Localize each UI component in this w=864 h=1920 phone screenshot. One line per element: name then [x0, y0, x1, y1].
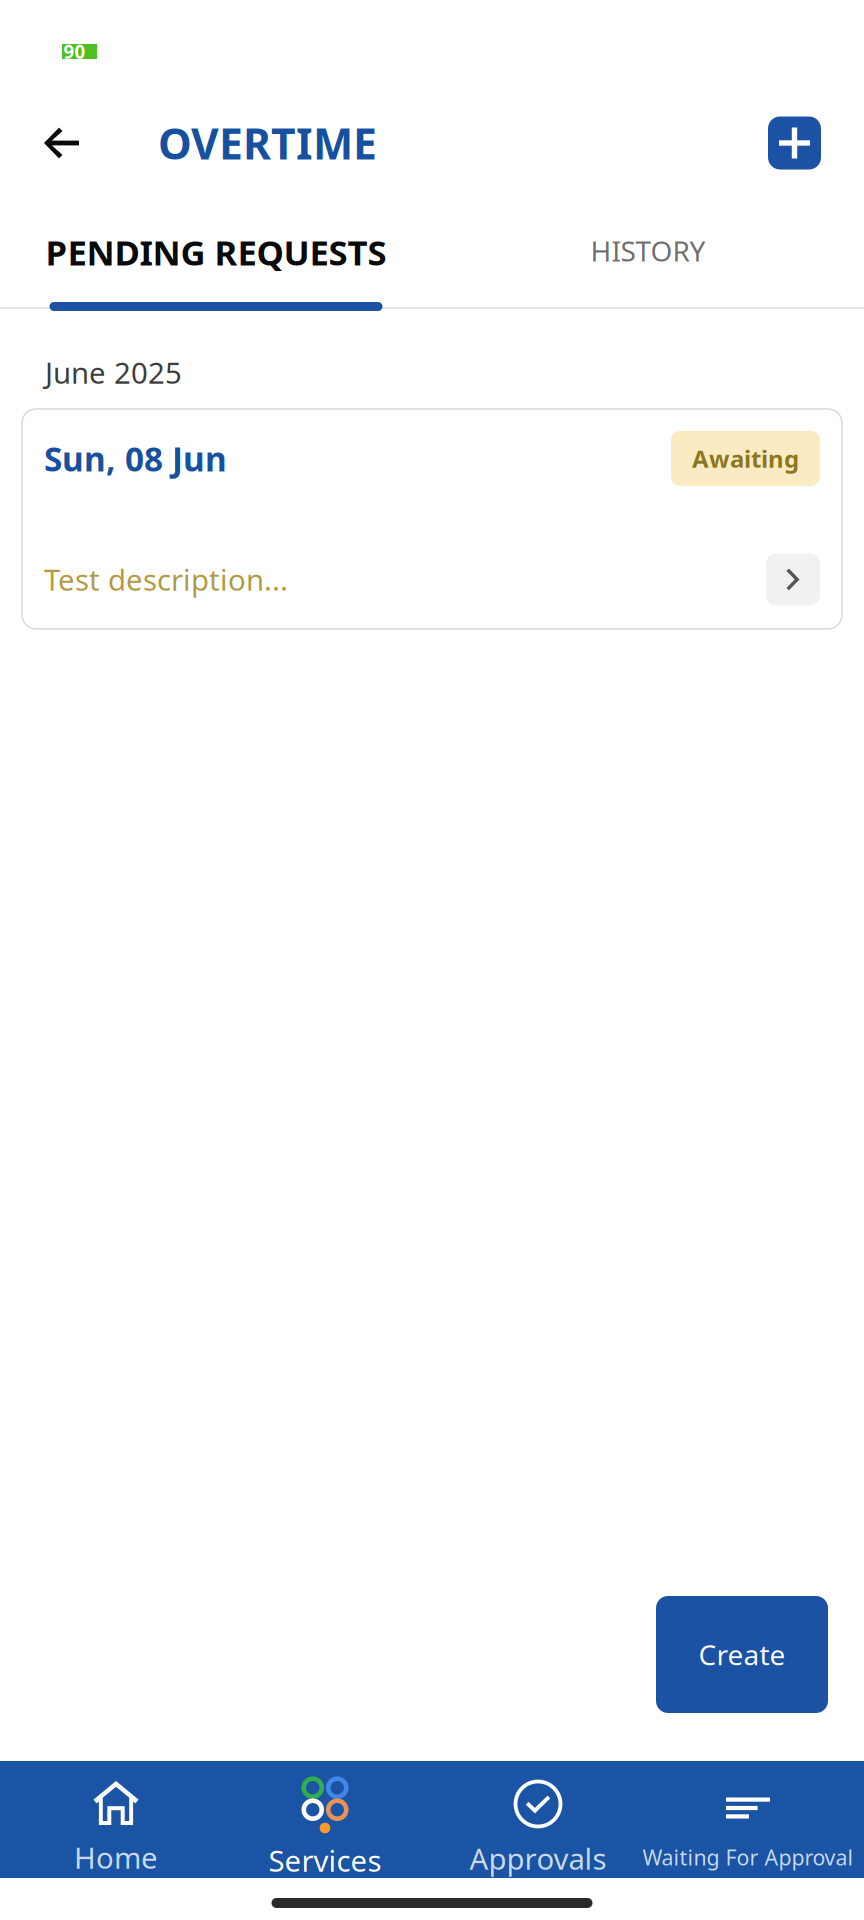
staticText: Create	[698, 1636, 785, 1673]
button[interactable]: Open request details	[766, 553, 820, 605]
button[interactable]: Waiting For Approval	[648, 1761, 864, 1878]
staticText: Waiting For Approval	[642, 1843, 853, 1871]
staticText: Test description...	[44, 560, 288, 599]
button[interactable]: PENDING REQUESTS	[0, 217, 432, 311]
button[interactable]: Services	[216, 1761, 432, 1878]
button[interactable]: Back	[0, 101, 158, 185]
staticText: 90	[63, 39, 85, 64]
staticText: Awaiting	[692, 442, 799, 474]
button[interactable]: Create	[656, 1596, 828, 1713]
staticText: HISTORY	[590, 232, 705, 269]
staticText: OVERTIME	[158, 115, 377, 171]
button[interactable]: Approvals	[432, 1761, 648, 1878]
staticText: Home	[74, 1838, 158, 1877]
button[interactable]: HISTORY	[432, 217, 864, 311]
button[interactable]: Add	[768, 116, 864, 169]
staticText: Sun, 08 Jun	[44, 436, 227, 481]
button[interactable]: Home	[0, 1761, 216, 1878]
staticText: Approvals	[469, 1839, 606, 1878]
staticText: Services	[268, 1841, 381, 1880]
staticText: PENDING REQUESTS	[45, 229, 386, 275]
staticText: June 2025	[45, 353, 182, 392]
